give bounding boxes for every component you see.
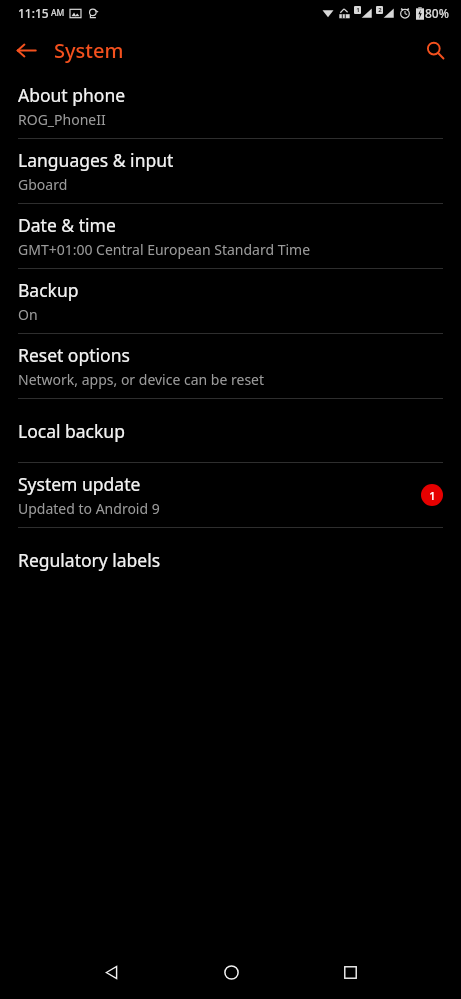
- staticText: GMT+01:00 Central European Standard Time: [18, 240, 311, 259]
- staticText: Local backup: [18, 419, 125, 443]
- button[interactable]: Back: [87, 948, 135, 996]
- staticText: Backup: [18, 278, 79, 302]
- staticText: System: [54, 37, 124, 64]
- staticText: Network, apps, or device can be reset: [18, 370, 265, 389]
- staticText: 11:15: [18, 5, 49, 21]
- button[interactable]: Back: [8, 32, 44, 68]
- staticText: 1: [429, 488, 436, 503]
- staticText: 1: [356, 6, 360, 14]
- staticText: Reset options: [18, 343, 130, 367]
- button[interactable]: Search: [416, 31, 454, 69]
- staticText: About phone: [18, 83, 126, 107]
- staticText: Date & time: [18, 213, 116, 237]
- button[interactable]: Regulatory labels: [0, 528, 461, 591]
- button[interactable]: Recent apps: [326, 948, 374, 996]
- staticText: Regulatory labels: [18, 548, 161, 572]
- button[interactable]: Languages & input: [0, 139, 461, 203]
- staticText: Languages & input: [18, 148, 174, 172]
- staticText: 2: [378, 6, 382, 14]
- staticText: ROG_PhoneII: [18, 110, 106, 129]
- staticText: Gboard: [18, 175, 68, 194]
- staticText: On: [18, 305, 38, 324]
- staticText: Updated to Android 9: [18, 499, 160, 518]
- button[interactable]: Date & time: [0, 204, 461, 268]
- staticText: System update: [18, 472, 141, 496]
- button[interactable]: Backup: [0, 269, 461, 333]
- staticText: 80%: [425, 5, 449, 21]
- button[interactable]: About phone: [0, 74, 461, 138]
- button[interactable]: Home: [207, 948, 255, 996]
- staticText: AM: [51, 7, 65, 19]
- button[interactable]: System update: [0, 463, 461, 527]
- button[interactable]: Local backup: [0, 399, 461, 462]
- button[interactable]: Reset options: [0, 334, 461, 398]
